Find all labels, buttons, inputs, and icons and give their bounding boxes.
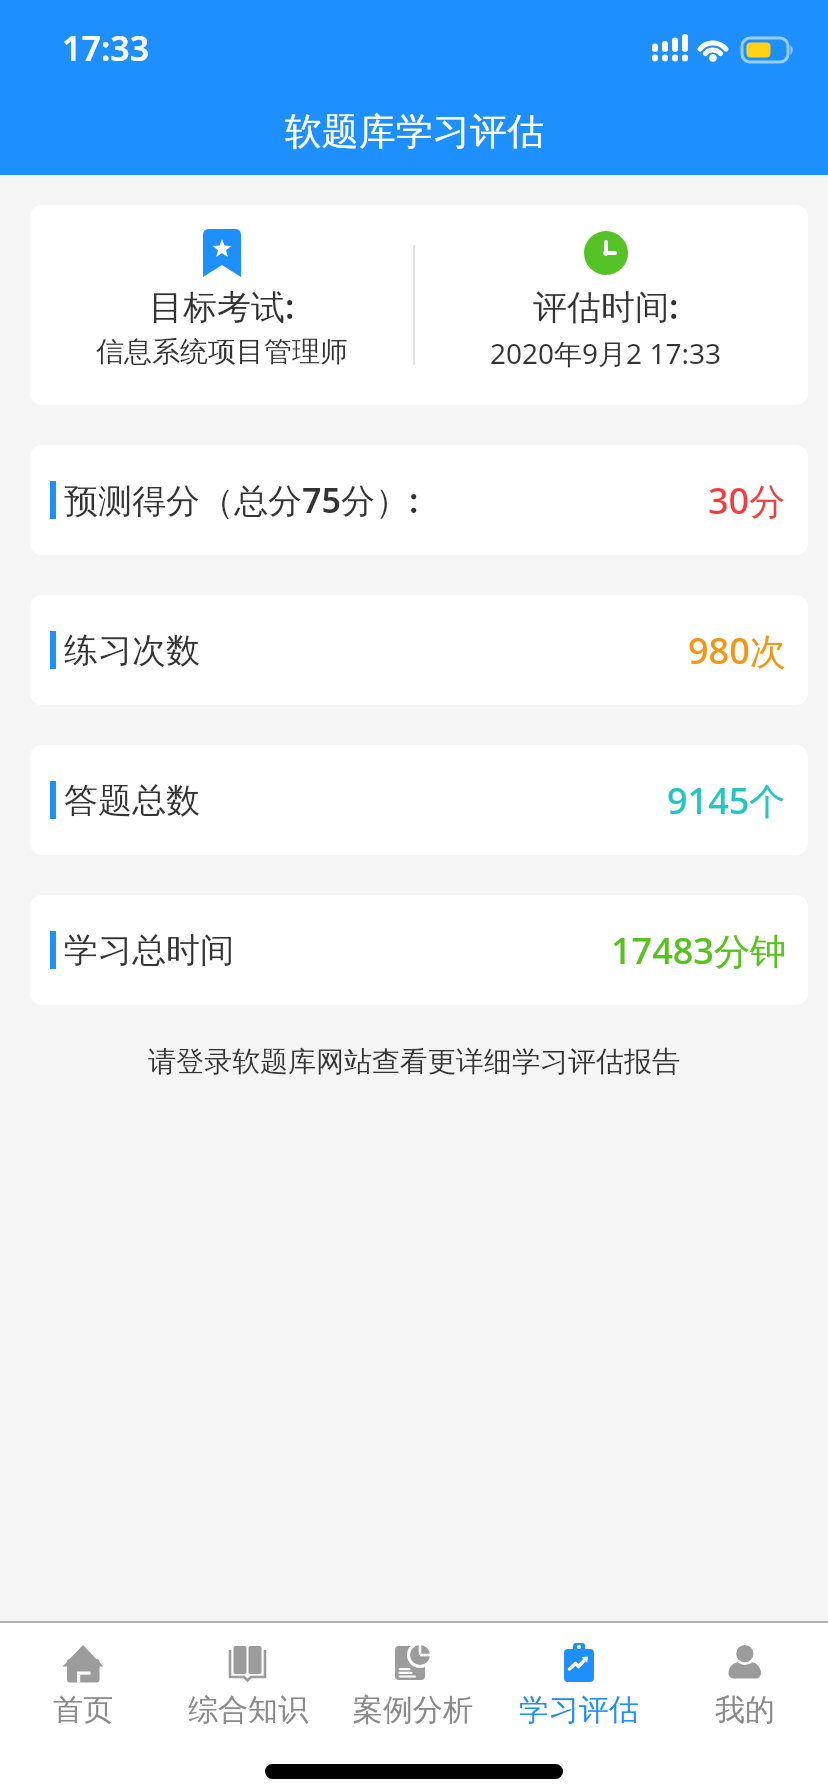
staticText: 9145个 (667, 776, 786, 825)
staticText: 目标考试: (149, 283, 295, 329)
button[interactable]: 预测得分（总分75分）: (30, 445, 808, 555)
staticText: 17483分钟 (611, 926, 786, 975)
staticText: 我的 (715, 1691, 775, 1729)
staticText: 17:33 (62, 25, 150, 71)
staticText: 30分 (708, 476, 786, 525)
button[interactable]: 我的 (662, 1641, 828, 1729)
staticText: 信息系统项目管理师 (96, 334, 348, 369)
staticText: 980次 (688, 626, 786, 675)
staticText: 练习次数 (64, 629, 200, 672)
staticText: 学习总时间 (64, 929, 234, 972)
staticText: 评估时间: (533, 283, 679, 329)
staticText: 软题库学习评估 (285, 108, 544, 155)
button[interactable]: 评估时间: (408, 205, 803, 405)
staticText: 综合知识 (188, 1691, 308, 1729)
button[interactable]: 首页 (0, 1641, 165, 1729)
staticText: 预测得分（总分75分）: (64, 477, 419, 523)
button[interactable]: 学习总时间 (30, 895, 808, 1005)
staticText: 请登录软题库网站查看更详细学习评估报告 (148, 1044, 680, 1079)
staticText: 案例分析 (353, 1691, 473, 1729)
button[interactable]: 学习评估 (496, 1641, 662, 1729)
button[interactable]: 目标考试: (30, 205, 413, 405)
button[interactable]: 案例分析 (330, 1641, 496, 1729)
staticText: 学习评估 (519, 1691, 639, 1729)
button[interactable]: 练习次数 (30, 595, 808, 705)
staticText: 2020年9月2 17:33 (490, 334, 721, 372)
staticText: 答题总数 (64, 779, 200, 822)
button[interactable]: 综合知识 (165, 1641, 330, 1729)
button[interactable]: 答题总数 (30, 745, 808, 855)
staticText: 首页 (53, 1691, 113, 1729)
